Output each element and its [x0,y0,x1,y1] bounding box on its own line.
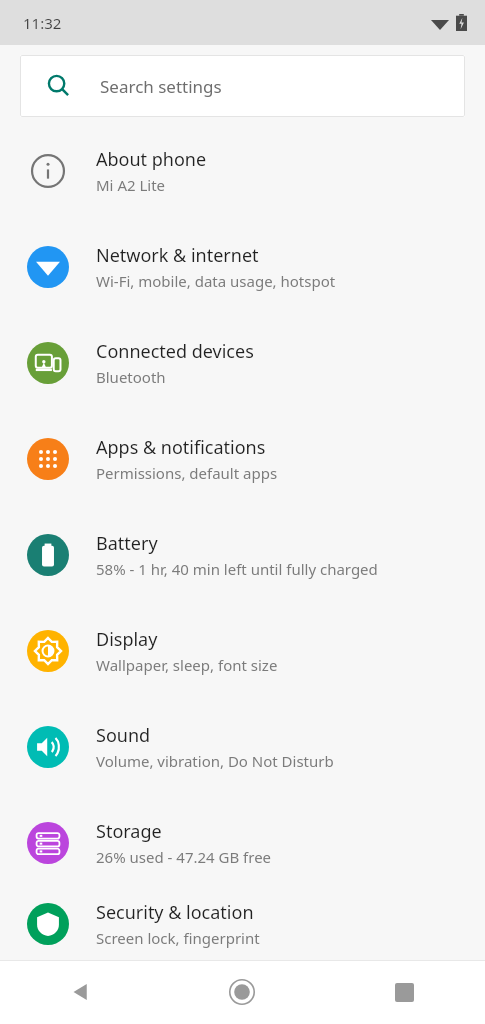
button[interactable]: Network & internet [0,219,485,315]
staticText: Wallpaper, sleep, font size [96,655,278,675]
staticText: 58% - 1 hr, 40 min left until fully char… [96,559,378,579]
staticText: Connected devices [96,339,254,364]
staticText: Sound [96,723,151,748]
staticText: Bluetooth [96,367,166,387]
staticText: Volume, vibration, Do Not Disturb [96,751,334,771]
staticText: Mi A2 Lite [96,175,166,195]
button[interactable]: Search settings [20,55,465,117]
staticText: Wi-Fi, mobile, data usage, hotspot [96,271,336,291]
staticText: About phone [96,147,207,172]
button[interactable]: Apps & notifications [0,411,485,507]
button[interactable]: About phone [0,127,485,219]
staticText: 26% used - 47.24 GB free [96,847,272,867]
staticText: Network & internet [96,243,259,268]
staticText: Display [96,627,158,652]
button[interactable]: Sound [0,699,485,795]
staticText: Search settings [100,75,222,98]
staticText: 11:32 [23,13,62,33]
staticText: Screen lock, fingerprint [96,928,260,948]
staticText: Permissions, default apps [96,463,278,483]
staticText: Storage [96,819,162,844]
button[interactable]: Display [0,603,485,699]
staticText: Battery [96,531,158,556]
button[interactable]: Security & location [0,891,485,956]
staticText: Security & location [96,900,254,925]
button[interactable]: Connected devices [0,315,485,411]
staticText: Apps & notifications [96,435,266,460]
button[interactable]: Storage [0,795,485,891]
button[interactable]: Home [161,960,323,1024]
button[interactable]: Back [0,960,161,1024]
button[interactable]: Battery [0,507,485,603]
button[interactable]: Recent apps [323,960,485,1024]
